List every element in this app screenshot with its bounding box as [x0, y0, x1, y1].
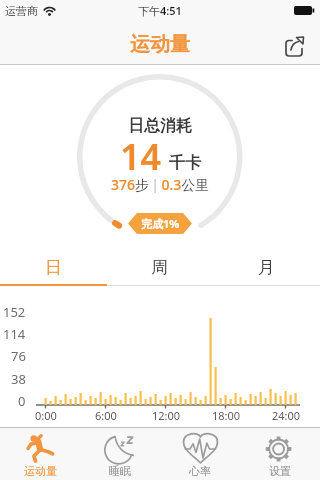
button[interactable]: 完成1%	[128, 213, 192, 234]
staticText: 运动量	[24, 464, 57, 478]
staticText: 0	[18, 392, 26, 410]
button[interactable]: 周	[106, 251, 213, 284]
staticText: 千卡	[169, 153, 201, 173]
staticText: 114	[3, 325, 26, 343]
button[interactable]: 设置	[240, 428, 320, 480]
staticText: 下午4:51	[138, 3, 182, 18]
staticText: 76	[11, 347, 26, 365]
staticText: 152	[3, 303, 26, 321]
button[interactable]: 运动量	[0, 428, 80, 480]
staticText: 完成1%	[141, 216, 180, 231]
button[interactable]: 睡眠	[80, 428, 160, 480]
staticText: 月	[258, 257, 275, 278]
staticText: 12:00	[152, 408, 181, 423]
button[interactable]: 月	[213, 251, 320, 284]
staticText: 运动量	[130, 32, 190, 57]
staticText: 18:00	[212, 408, 241, 423]
staticText: 38	[11, 370, 26, 388]
staticText: 日	[45, 257, 62, 278]
staticText: 0:00	[35, 408, 57, 423]
staticText: 周	[151, 257, 168, 278]
staticText: 6:00	[95, 408, 117, 423]
staticText: 376步 | 0.3公里	[111, 175, 210, 194]
button[interactable]: 日	[0, 251, 106, 284]
staticText: 设置	[269, 464, 291, 478]
staticText: 心率	[189, 464, 211, 478]
button[interactable]	[282, 33, 310, 59]
staticText: 14	[120, 132, 162, 181]
button[interactable]: 心率	[160, 428, 240, 480]
staticText: 24:00	[272, 408, 301, 423]
staticText: 睡眠	[109, 464, 131, 478]
staticText: 运营商	[5, 4, 38, 18]
staticText: 日总消耗	[128, 116, 192, 136]
